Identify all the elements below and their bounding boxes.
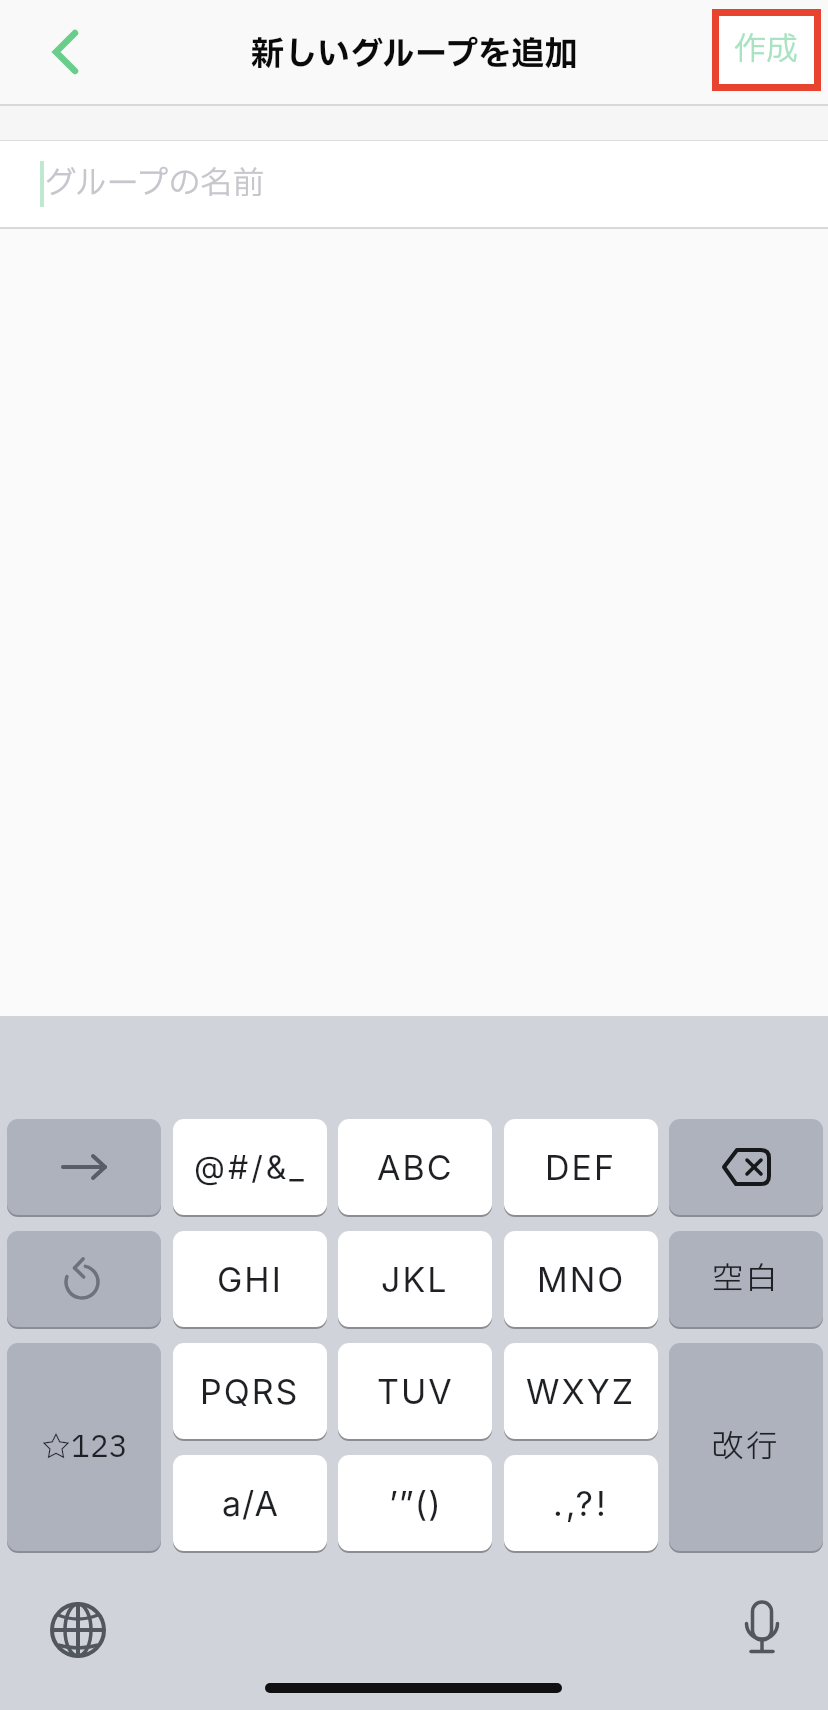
staticText: ABC	[377, 1147, 454, 1188]
button[interactable]: GHI	[173, 1231, 327, 1327]
staticText: MNO	[537, 1259, 626, 1300]
staticText: ’”()	[389, 1483, 442, 1524]
button[interactable]	[40, 18, 90, 86]
button[interactable]: .,?!	[504, 1455, 658, 1551]
button[interactable]: @#/&_	[173, 1119, 327, 1215]
staticText: a/A	[222, 1483, 279, 1524]
staticText: ☆123	[41, 1425, 128, 1470]
button[interactable]: グループの名前	[0, 141, 828, 227]
button[interactable]: 改行	[669, 1343, 823, 1551]
staticText: グループの名前	[44, 160, 265, 208]
staticText: TUV	[377, 1371, 454, 1412]
button[interactable]	[669, 1119, 823, 1215]
button[interactable]: 作成	[719, 16, 814, 84]
button[interactable]: MNO	[504, 1231, 658, 1327]
staticText: JKL	[381, 1259, 449, 1300]
staticText: 新しいグループを追加	[251, 30, 578, 79]
staticText: WXYZ	[526, 1371, 636, 1412]
staticText: .,?!	[553, 1483, 609, 1524]
button[interactable]: DEF	[504, 1119, 658, 1215]
button[interactable]	[7, 1119, 161, 1215]
button[interactable]: ’”()	[338, 1455, 492, 1551]
button[interactable]: JKL	[338, 1231, 492, 1327]
button[interactable]: a/A	[173, 1455, 327, 1551]
staticText: 空白	[712, 1256, 780, 1302]
button[interactable]: ☆123	[7, 1343, 161, 1551]
button[interactable]: 空白	[669, 1231, 823, 1327]
button[interactable]	[46, 1598, 110, 1662]
staticText: @#/&_	[194, 1148, 307, 1187]
button[interactable]: PQRS	[173, 1343, 327, 1439]
staticText: 改行	[712, 1424, 780, 1470]
button[interactable]	[7, 1231, 161, 1327]
staticText: GHI	[217, 1259, 283, 1300]
button[interactable]	[730, 1598, 794, 1662]
button[interactable]: TUV	[338, 1343, 492, 1439]
staticText: DEF	[545, 1147, 617, 1188]
staticText: 作成	[734, 26, 799, 74]
button[interactable]: ABC	[338, 1119, 492, 1215]
staticText: PQRS	[200, 1371, 300, 1412]
button[interactable]: WXYZ	[504, 1343, 658, 1439]
